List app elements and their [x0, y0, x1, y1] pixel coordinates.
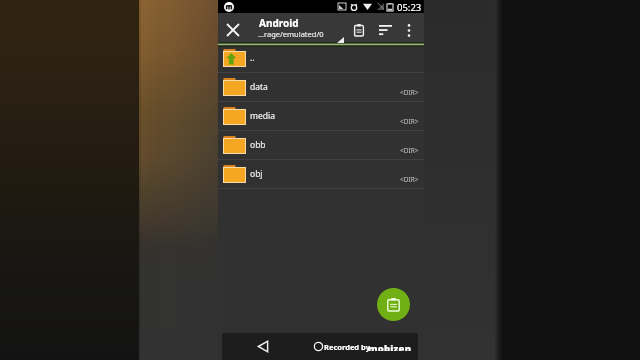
- staticText: obj: [250, 168, 263, 180]
- button[interactable]: Paste: [346, 16, 372, 42]
- staticText: ..: [250, 52, 255, 64]
- button[interactable]: obj: [218, 160, 424, 188]
- button[interactable]: More options: [396, 16, 422, 42]
- staticText: mobizen: [368, 342, 412, 351]
- button[interactable]: Android: [256, 13, 346, 42]
- button[interactable]: obb: [218, 131, 424, 159]
- staticText: media: [250, 110, 275, 122]
- staticText: <DIR>: [400, 88, 419, 97]
- button[interactable]: ..: [218, 44, 424, 72]
- staticText: <DIR>: [400, 175, 419, 184]
- button[interactable]: Back: [252, 336, 274, 358]
- button[interactable]: data: [218, 73, 424, 101]
- button[interactable]: media: [218, 102, 424, 130]
- staticText: ...rage/emulated/0: [258, 29, 324, 39]
- button[interactable]: Close: [221, 18, 245, 42]
- staticText: Recorded by: [324, 342, 370, 352]
- staticText: Android: [259, 16, 299, 30]
- staticText: <DIR>: [400, 146, 419, 155]
- button[interactable]: Sort: [370, 16, 396, 42]
- button[interactable]: Paste: [377, 288, 410, 321]
- staticText: data: [250, 81, 268, 93]
- staticText: <DIR>: [400, 117, 419, 126]
- staticText: obb: [250, 139, 266, 151]
- staticText: 05:23: [397, 1, 422, 14]
